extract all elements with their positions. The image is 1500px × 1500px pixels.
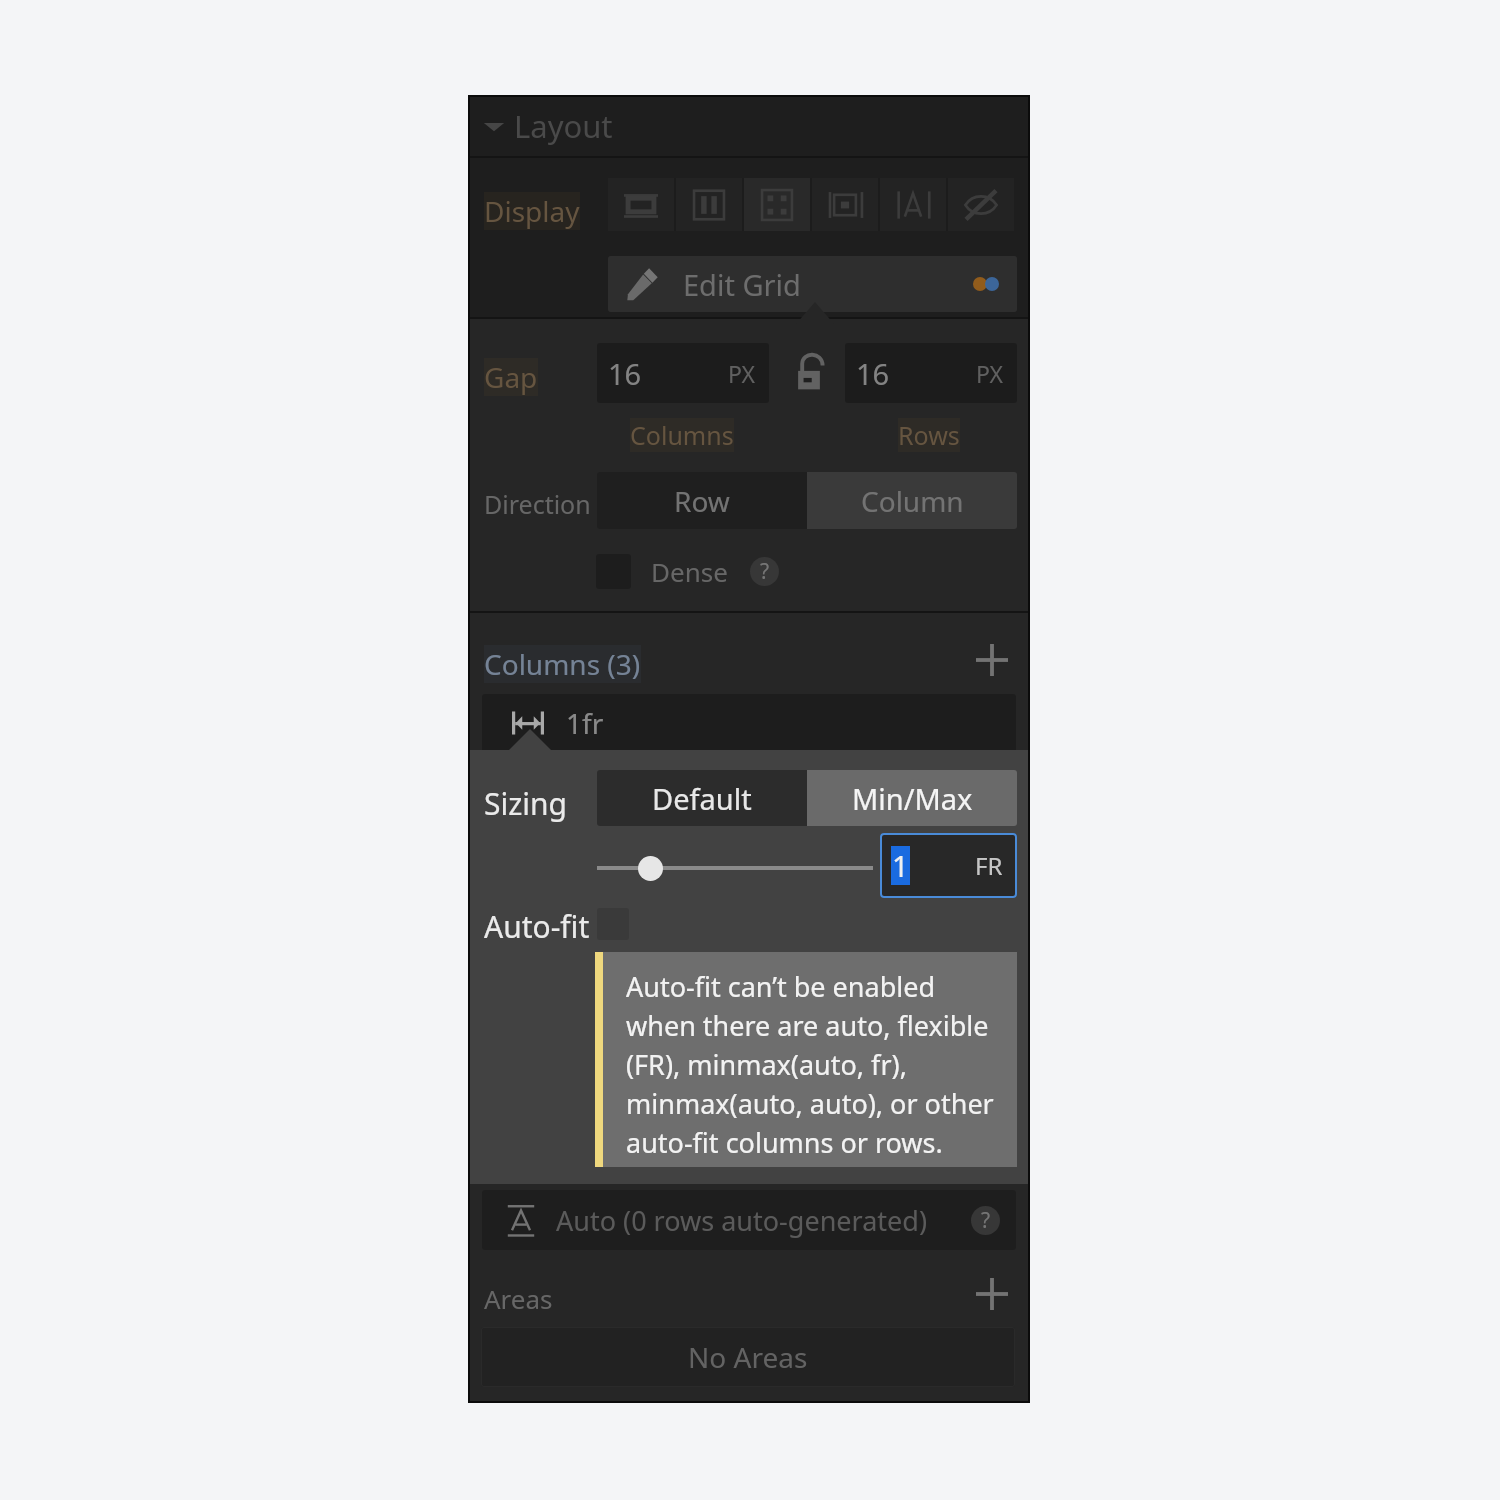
- button[interactable]: Inline: [880, 178, 946, 231]
- button[interactable]: Auto-fit: [484, 906, 590, 947]
- staticText: Row: [674, 482, 730, 520]
- staticText: Columns (3): [484, 645, 641, 683]
- button[interactable]: Dense: [596, 549, 779, 593]
- staticText: Display: [484, 192, 580, 230]
- staticText: PX: [976, 358, 1003, 389]
- button[interactable]: 16: [597, 343, 769, 403]
- staticText: No Areas: [688, 1338, 808, 1376]
- staticText: Direction: [484, 487, 591, 521]
- button[interactable]: Display: [484, 192, 580, 230]
- staticText: Columns: [630, 418, 734, 452]
- button[interactable]: Sizing: [484, 783, 568, 824]
- button[interactable]: Help: [971, 1206, 1000, 1235]
- button[interactable]: None: [948, 178, 1014, 231]
- button[interactable]: Inline block: [812, 178, 878, 231]
- button[interactable]: Help: [750, 557, 779, 586]
- button[interactable]: Flex: [676, 178, 742, 231]
- button[interactable]: No Areas: [481, 1327, 1015, 1387]
- button[interactable]: 1fr: [482, 694, 1016, 752]
- button[interactable]: Layout: [468, 95, 1030, 156]
- button[interactable]: Add column: [970, 638, 1014, 682]
- staticText: Column: [861, 482, 964, 520]
- button[interactable]: Auto (0 rows auto-generated): [482, 1190, 1016, 1250]
- staticText: Auto-fit: [484, 906, 590, 947]
- staticText: 1: [892, 846, 909, 885]
- button[interactable]: Row: [597, 472, 807, 529]
- button[interactable]: 1: [880, 833, 1017, 898]
- staticText: PX: [728, 358, 755, 389]
- button[interactable]: Block: [608, 178, 674, 231]
- staticText: 1fr: [566, 704, 604, 742]
- staticText: Auto-fit can’t be enabled when there are…: [626, 968, 994, 1161]
- button[interactable]: Default: [597, 770, 807, 826]
- button[interactable]: Add area: [970, 1272, 1014, 1316]
- button[interactable]: Link gap values: [787, 348, 831, 392]
- button[interactable]: Edit Grid: [608, 256, 1017, 312]
- button[interactable]: Columns: [630, 418, 734, 452]
- button[interactable]: Areas: [484, 1281, 553, 1316]
- staticText: Min/Max: [852, 779, 973, 818]
- button[interactable]: Columns (3): [484, 645, 641, 683]
- staticText: Rows: [898, 418, 960, 452]
- staticText: 16: [608, 354, 642, 393]
- staticText: Areas: [484, 1281, 553, 1316]
- button[interactable]: 16: [845, 343, 1017, 403]
- staticText: ?: [981, 1206, 991, 1235]
- button[interactable]: Grid: [744, 178, 810, 231]
- staticText: Dense: [651, 554, 728, 589]
- staticText: 16: [856, 354, 890, 393]
- button[interactable]: Size slider: [638, 856, 663, 881]
- staticText: FR: [975, 849, 1003, 882]
- staticText: Gap: [484, 358, 538, 396]
- button[interactable]: Direction: [484, 487, 591, 521]
- staticText: Auto (0 rows auto-generated): [556, 1202, 927, 1239]
- button[interactable]: Column: [807, 472, 1017, 529]
- button[interactable]: Rows: [898, 418, 960, 452]
- staticText: Sizing: [484, 783, 568, 824]
- staticText: Default: [652, 779, 752, 818]
- button[interactable]: Min/Max: [807, 770, 1017, 826]
- staticText: Edit Grid: [683, 265, 801, 304]
- staticText: ?: [760, 557, 770, 586]
- staticText: Layout: [514, 105, 613, 147]
- button[interactable]: Gap: [484, 358, 538, 396]
